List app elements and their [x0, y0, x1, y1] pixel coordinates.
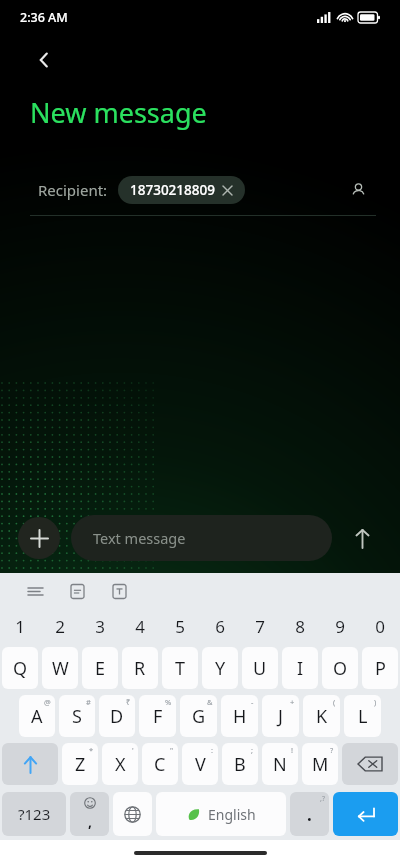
- button[interactable]: 1: [0, 608, 40, 644]
- staticText: K: [316, 704, 328, 729]
- staticText: 0: [375, 615, 385, 638]
- staticText: &: [207, 697, 213, 707]
- button[interactable]: 4: [120, 608, 160, 644]
- button[interactable]: 7: [240, 608, 280, 644]
- button[interactable]: Backspace: [342, 743, 398, 785]
- button[interactable]: 18730218809: [118, 176, 245, 204]
- staticText: R: [134, 656, 146, 681]
- button[interactable]: Change language: [113, 792, 152, 836]
- button[interactable]: I: [282, 647, 318, 689]
- button[interactable]: B: [222, 743, 258, 785]
- staticText: ,?: [320, 794, 325, 804]
- button[interactable]: Text tools: [104, 576, 134, 606]
- button[interactable]: Y: [202, 647, 238, 689]
- staticText: !: [291, 745, 294, 755]
- button[interactable]: English: [156, 792, 286, 836]
- staticText: 6: [215, 615, 225, 638]
- staticText: F: [153, 704, 163, 729]
- staticText: ': [132, 745, 134, 755]
- button[interactable]: Add attachment: [18, 517, 60, 559]
- button[interactable]: O: [322, 647, 358, 689]
- button[interactable]: Period: [290, 792, 329, 836]
- staticText: X: [115, 752, 126, 777]
- button[interactable]: T: [162, 647, 198, 689]
- button[interactable]: U: [242, 647, 278, 689]
- staticText: I: [297, 656, 304, 681]
- staticText: E: [95, 656, 106, 681]
- staticText: ?: [330, 745, 334, 755]
- staticText: T: [175, 656, 186, 681]
- button[interactable]: 5: [160, 608, 200, 644]
- staticText: 7: [255, 615, 265, 638]
- button[interactable]: 2: [40, 608, 80, 644]
- staticText: English: [208, 805, 256, 824]
- staticText: 5: [175, 615, 185, 638]
- staticText: ?123: [18, 804, 51, 824]
- button[interactable]: Z: [62, 743, 98, 785]
- button[interactable]: J: [262, 695, 299, 737]
- button[interactable]: Enter: [333, 792, 398, 836]
- staticText: ": [170, 745, 174, 755]
- button[interactable]: Back: [26, 42, 62, 78]
- staticText: Text message: [93, 528, 186, 548]
- staticText: U: [253, 656, 267, 681]
- button[interactable]: P: [362, 647, 398, 689]
- staticText: H: [233, 704, 247, 729]
- staticText: A: [31, 704, 43, 729]
- staticText: C: [154, 752, 166, 777]
- staticText: 2:36 AM: [20, 9, 68, 26]
- staticText: M: [312, 752, 329, 777]
- button[interactable]: X: [102, 743, 138, 785]
- staticText: 8: [295, 615, 305, 638]
- staticText: P: [375, 656, 386, 681]
- button[interactable]: Q: [2, 647, 38, 689]
- button[interactable]: N: [262, 743, 298, 785]
- button[interactable]: F: [139, 695, 176, 737]
- button[interactable]: Emoji: [70, 792, 109, 836]
- button[interactable]: 0: [360, 608, 400, 644]
- staticText: G: [192, 704, 206, 729]
- button[interactable]: Shift: [2, 743, 58, 785]
- staticText: W: [52, 656, 69, 681]
- button[interactable]: S: [59, 695, 95, 737]
- button[interactable]: 8: [280, 608, 320, 644]
- button[interactable]: L: [344, 695, 381, 737]
- button[interactable]: R: [122, 647, 158, 689]
- button[interactable]: V: [182, 743, 218, 785]
- staticText: 4: [135, 615, 145, 638]
- staticText: Z: [75, 752, 86, 777]
- button[interactable]: 3: [80, 608, 120, 644]
- button[interactable]: Menu: [20, 576, 50, 606]
- button[interactable]: H: [221, 695, 258, 737]
- staticText: S: [72, 704, 82, 729]
- staticText: Y: [215, 656, 226, 681]
- button[interactable]: 6: [200, 608, 240, 644]
- button[interactable]: G: [180, 695, 217, 737]
- staticText: Q: [13, 656, 28, 681]
- staticText: %: [165, 697, 172, 707]
- button[interactable]: Clipboard: [62, 576, 92, 606]
- staticText: N: [273, 752, 287, 777]
- button[interactable]: Choose contact: [342, 174, 374, 206]
- button[interactable]: Send: [342, 518, 382, 558]
- button[interactable]: W: [42, 647, 78, 689]
- staticText: 9: [335, 615, 345, 638]
- staticText: New message: [30, 94, 207, 131]
- button[interactable]: A: [19, 695, 55, 737]
- button[interactable]: 9: [320, 608, 360, 644]
- button[interactable]: C: [142, 743, 178, 785]
- button[interactable]: Text message: [71, 515, 332, 561]
- staticText: ₹: [126, 697, 131, 707]
- staticText: L: [358, 704, 368, 729]
- staticText: J: [278, 704, 283, 729]
- staticText: O: [333, 656, 348, 681]
- staticText: #: [86, 697, 91, 707]
- staticText: 1: [15, 615, 25, 638]
- button[interactable]: M: [302, 743, 338, 785]
- staticText: ): [374, 697, 377, 707]
- button[interactable]: K: [303, 695, 340, 737]
- button[interactable]: Symbols: [2, 792, 66, 836]
- button[interactable]: D: [99, 695, 135, 737]
- button[interactable]: E: [82, 647, 118, 689]
- staticText: Recipient:: [38, 180, 108, 200]
